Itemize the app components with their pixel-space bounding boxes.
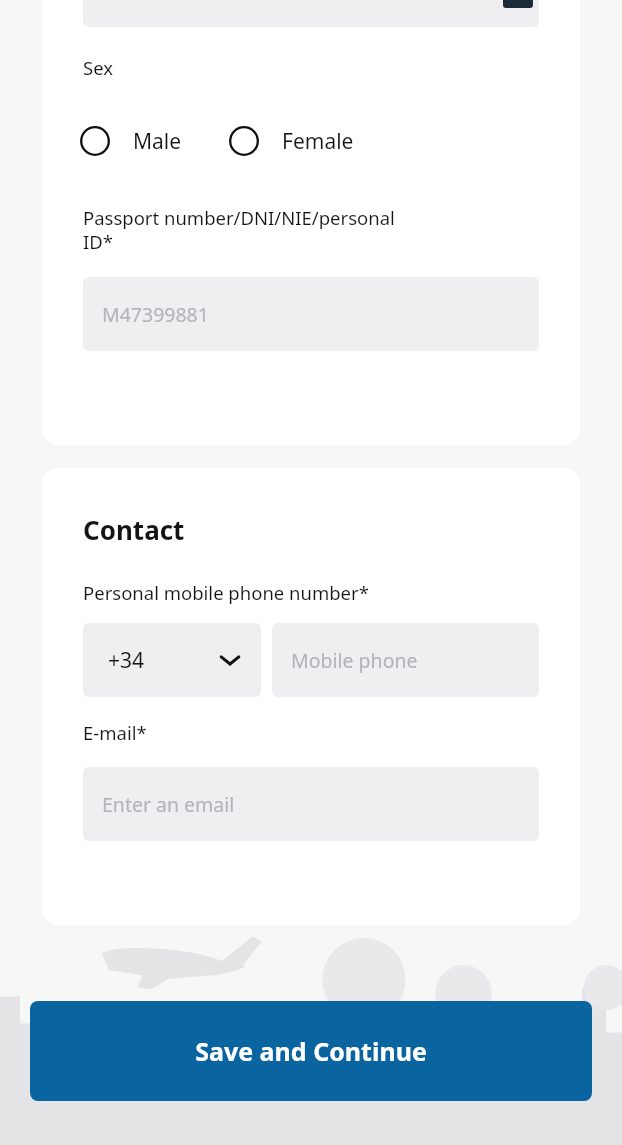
staticText: M47399881 [102, 301, 209, 328]
button[interactable]: Save and Continue [30, 1001, 592, 1101]
staticText: E-mail* [83, 720, 147, 745]
staticText: Mobile phone [291, 647, 418, 674]
staticText: Enter an email [102, 791, 235, 818]
button[interactable] [218, 115, 270, 167]
button[interactable] [69, 115, 121, 167]
button[interactable]: Female [282, 127, 354, 156]
staticText: Contact [83, 512, 185, 547]
staticText: Passport number/DNI/NIE/personal ID* [83, 205, 395, 254]
staticText: Save and Continue [195, 1034, 427, 1068]
button[interactable]: Mobile phone [272, 623, 539, 697]
staticText: Sex [83, 55, 114, 80]
button[interactable]: Male [133, 127, 182, 156]
button[interactable]: Enter an email [83, 767, 539, 841]
other: Open calendar [503, 0, 533, 8]
staticText: Personal mobile phone number* [83, 580, 369, 605]
button[interactable]: +34 [83, 623, 261, 697]
staticText: +34 [108, 646, 145, 675]
button[interactable]: M47399881 [83, 277, 539, 351]
button[interactable]: Open calendar [83, 0, 539, 27]
